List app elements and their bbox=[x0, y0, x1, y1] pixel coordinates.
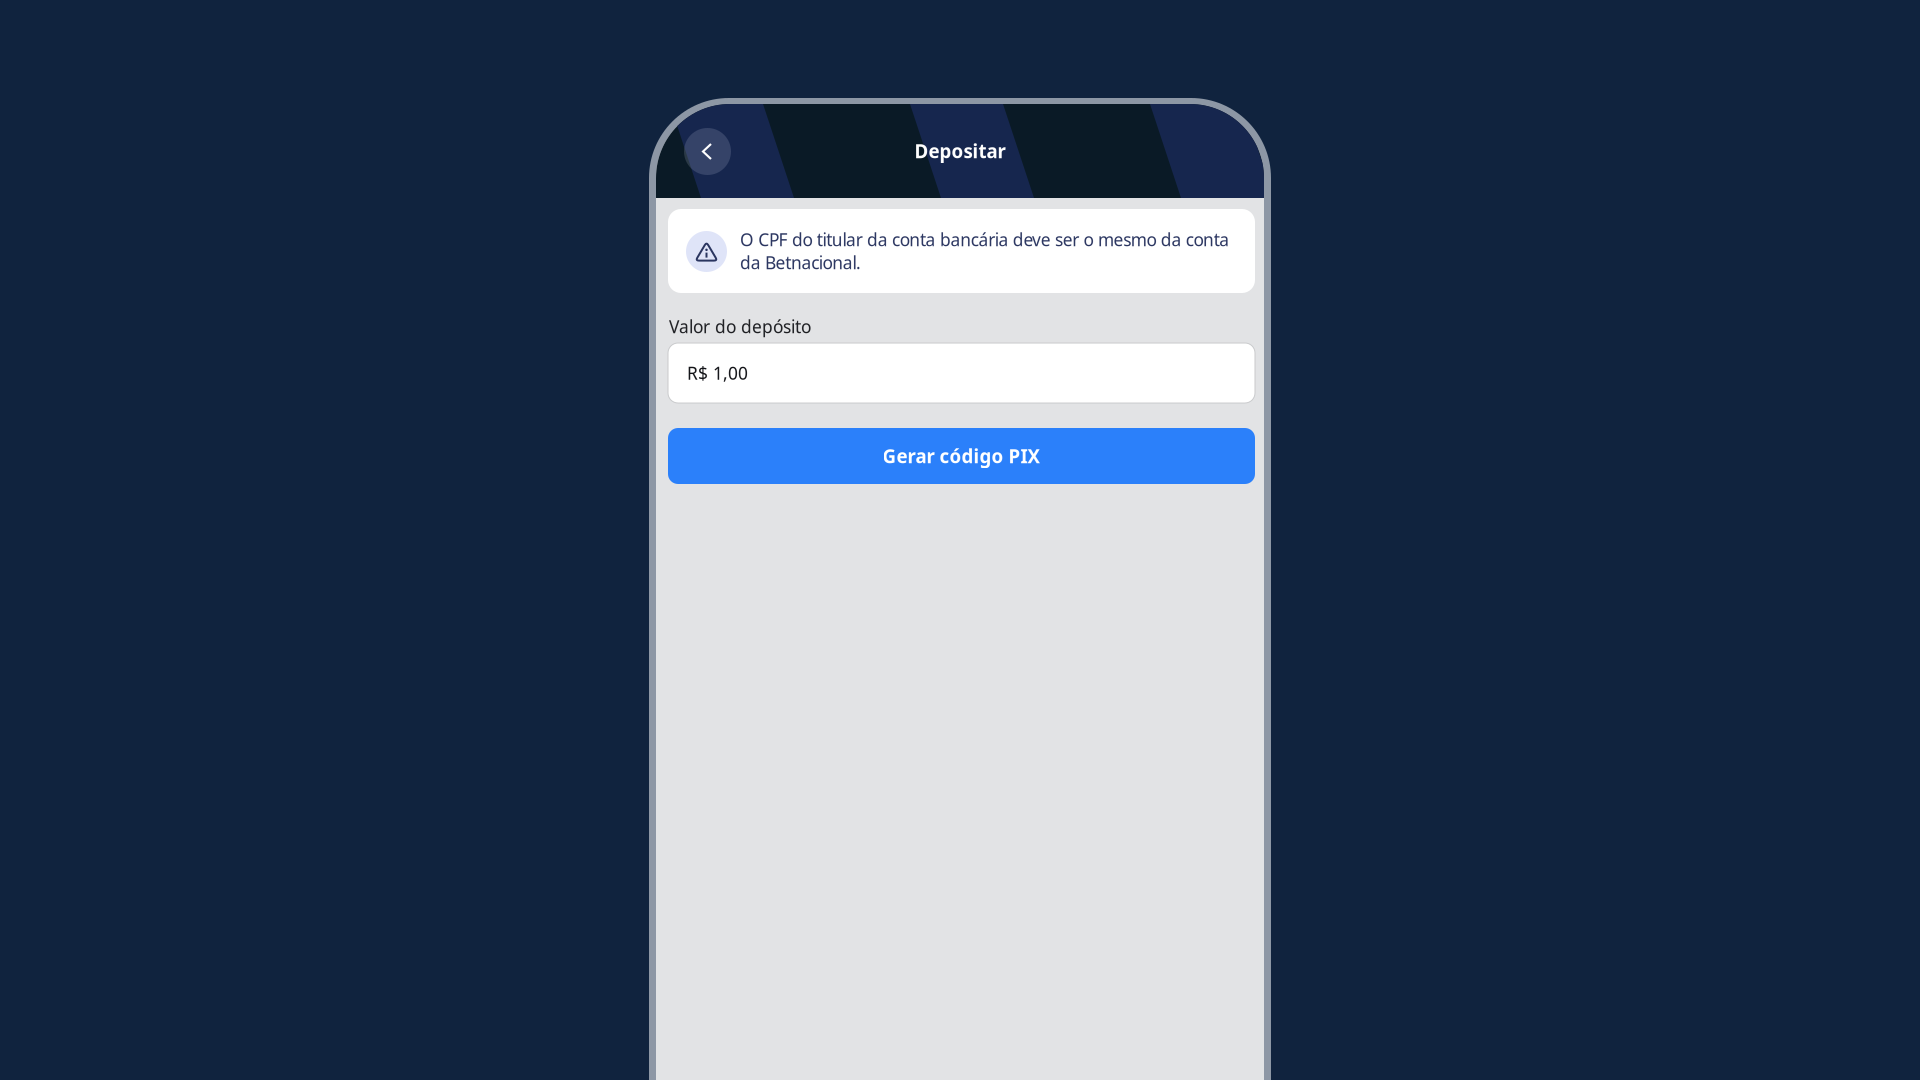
staticText: R$ 1,00 bbox=[687, 361, 748, 384]
staticText: O CPF do titular da conta bancária deve … bbox=[740, 228, 1229, 274]
staticText: Valor do depósito bbox=[669, 315, 811, 338]
staticText: Gerar código PIX bbox=[882, 444, 1040, 468]
staticText: Depositar bbox=[914, 139, 1005, 163]
button[interactable]: Voltar bbox=[684, 128, 731, 175]
button[interactable]: Gerar código PIX bbox=[668, 428, 1255, 484]
